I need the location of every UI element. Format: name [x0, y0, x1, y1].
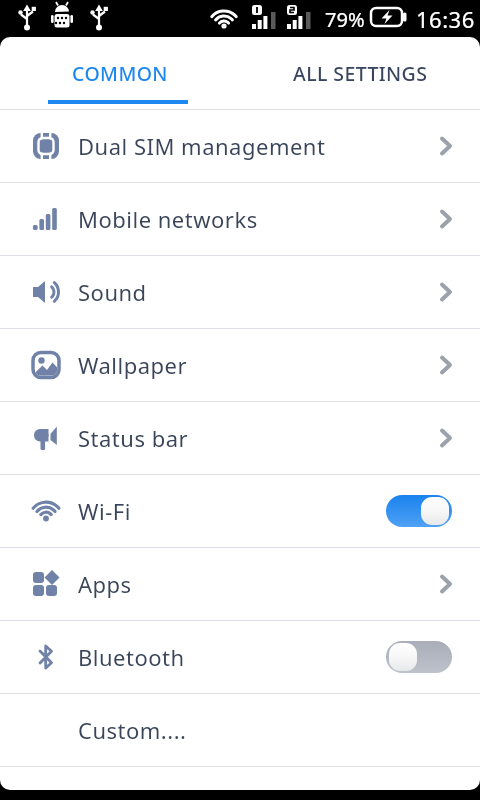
button[interactable]: Mobile networks	[0, 183, 480, 255]
button[interactable]: COMMON	[0, 37, 240, 109]
button[interactable]: Apps	[0, 548, 480, 620]
button[interactable]: Wallpaper	[0, 329, 480, 401]
button[interactable]: Wi-Fi	[0, 475, 480, 547]
staticText: 79%	[325, 6, 365, 33]
staticText: Apps	[78, 569, 132, 599]
staticText: Sound	[78, 277, 147, 307]
staticText: Wallpaper	[78, 350, 188, 380]
staticText: Mobile networks	[78, 204, 258, 234]
staticText: Custom....	[78, 715, 187, 745]
staticText: Status bar	[78, 423, 189, 453]
button[interactable]: Bluetooth	[0, 621, 480, 693]
staticText: ALL SETTINGS	[293, 60, 428, 87]
button[interactable]: Sound	[0, 256, 480, 328]
button[interactable]: ALL SETTINGS	[240, 37, 480, 109]
button[interactable]: Custom....	[0, 694, 480, 766]
button[interactable]: Status bar	[0, 402, 480, 474]
staticText: 16:36	[416, 4, 475, 34]
button[interactable]: Dual SIM management	[0, 110, 480, 182]
staticText: COMMON	[72, 60, 168, 87]
staticText: Dual SIM management	[78, 131, 326, 161]
staticText: Bluetooth	[78, 642, 185, 672]
staticText: Wi-Fi	[78, 496, 131, 526]
